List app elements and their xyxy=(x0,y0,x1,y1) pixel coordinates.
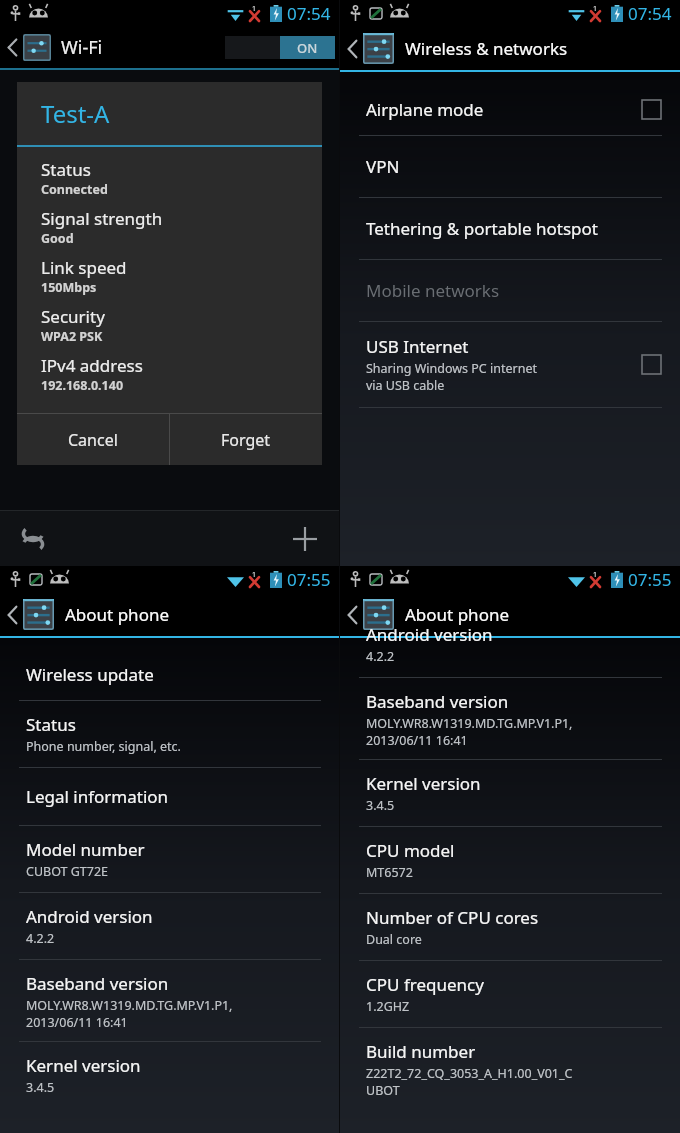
staticText: UBOT xyxy=(366,1082,400,1096)
staticText: Status xyxy=(26,713,76,736)
staticText: 2013/06/11 16:41 xyxy=(26,1014,128,1031)
button[interactable]: Status xyxy=(0,701,339,767)
button[interactable]: Wi-Fi on off switch xyxy=(225,36,335,59)
staticText: Android version xyxy=(366,623,493,646)
button[interactable]: Baseband version xyxy=(340,678,680,759)
staticText: ON xyxy=(297,39,318,57)
staticText: 1 xyxy=(252,570,257,580)
staticText: Dual core xyxy=(366,931,422,948)
staticText: 07:54 xyxy=(628,2,672,25)
other: Back xyxy=(347,604,358,626)
button[interactable]: Airplane mode xyxy=(340,84,680,135)
staticText: Good xyxy=(41,230,74,247)
staticText: Build number xyxy=(366,1040,476,1063)
staticText: Baseband version xyxy=(366,690,509,713)
button[interactable]: Mobile networks xyxy=(340,260,680,321)
staticText: VPN xyxy=(366,155,400,178)
staticText: CUBOT GT72E xyxy=(26,863,109,880)
button[interactable]: VPN xyxy=(340,136,680,197)
staticText: Mobile networks xyxy=(366,279,500,302)
staticText: About phone xyxy=(65,603,170,626)
staticText: MT6572 xyxy=(366,864,413,881)
staticText: Model number xyxy=(26,838,145,861)
button[interactable]: Baseband version xyxy=(0,960,339,1041)
button[interactable]: Kernel version xyxy=(0,1042,339,1108)
button[interactable]: Android version xyxy=(340,611,680,677)
staticText: Z22T2_72_CQ_3053_A_H1.00_V01_C xyxy=(366,1065,573,1082)
button[interactable]: Airplane mode checkbox xyxy=(641,99,662,120)
staticText: Sharing Windows PC internet xyxy=(366,360,537,377)
staticText: Connected xyxy=(41,181,108,198)
button[interactable]: Model number xyxy=(0,826,339,892)
staticText: 1.2GHZ xyxy=(366,998,410,1015)
button[interactable]: Forget xyxy=(170,414,322,465)
button[interactable]: Add network xyxy=(291,525,319,553)
staticText: 150Mbps xyxy=(41,279,97,296)
button[interactable]: Wireless update xyxy=(0,649,339,700)
staticText: WPA2 PSK xyxy=(41,328,103,345)
staticText: 4.2.2 xyxy=(26,930,55,947)
button[interactable]: Tethering & portable hotspot xyxy=(340,198,680,259)
staticText: Android version xyxy=(26,905,153,928)
staticText: via USB cable xyxy=(366,377,445,394)
staticText: Tethering & portable hotspot xyxy=(366,217,598,240)
button[interactable]: CPU model xyxy=(340,827,680,893)
staticText: Legal information xyxy=(26,785,169,808)
staticText: 2013/06/11 16:41 xyxy=(366,732,468,749)
button[interactable]: Back xyxy=(0,27,339,68)
staticText: USB Internet xyxy=(366,335,469,358)
button[interactable]: Number of CPU cores xyxy=(340,894,680,960)
button[interactable]: USB Internet checkbox xyxy=(641,354,662,375)
button[interactable]: Cancel xyxy=(17,414,169,465)
staticText: MOLY.WR8.W1319.MD.TG.MP.V1.P1, xyxy=(366,715,573,732)
button[interactable]: Back xyxy=(0,593,339,636)
staticText: Wi-Fi xyxy=(61,35,103,60)
staticText: Number of CPU cores xyxy=(366,906,539,929)
button[interactable]: Android version xyxy=(0,893,339,959)
button[interactable]: Kernel version xyxy=(340,760,680,826)
staticText: 07:54 xyxy=(287,2,331,25)
staticText: Wireless & networks xyxy=(405,37,568,60)
staticText: Link speed xyxy=(41,256,127,279)
staticText: Kernel version xyxy=(26,1054,141,1077)
button[interactable]: Legal information xyxy=(0,768,339,825)
button[interactable]: Back xyxy=(340,593,680,636)
button[interactable]: CPU frequency xyxy=(340,961,680,1027)
staticText: Kernel version xyxy=(366,772,481,795)
button[interactable]: Build number xyxy=(340,1028,680,1106)
staticText: 3.4.5 xyxy=(26,1079,55,1096)
staticText: Status xyxy=(41,158,91,181)
staticText: Signal strength xyxy=(41,207,163,230)
staticText: Wireless update xyxy=(26,663,154,686)
staticText: 192.168.0.140 xyxy=(41,377,124,394)
button[interactable]: Scan xyxy=(18,524,48,554)
staticText: 3.4.5 xyxy=(366,797,395,814)
button[interactable]: USB Internet xyxy=(340,322,680,407)
staticText: Baseband version xyxy=(26,972,169,995)
staticText: 4.2.2 xyxy=(366,648,395,665)
staticText: 1 xyxy=(593,4,598,14)
staticText: CPU frequency xyxy=(366,973,484,996)
staticText: Security xyxy=(41,305,105,328)
staticText: MOLY.WR8.W1319.MD.TG.MP.V1.P1, xyxy=(26,997,233,1014)
staticText: 07:55 xyxy=(628,568,672,591)
staticText: 1 xyxy=(593,570,598,580)
staticText: 07:55 xyxy=(287,568,331,591)
staticText: About phone xyxy=(405,603,510,626)
staticText: Phone number, signal, etc. xyxy=(26,738,181,755)
staticText: Airplane mode xyxy=(366,98,484,121)
staticText: Cancel xyxy=(68,429,118,451)
staticText: 1 xyxy=(252,4,257,14)
other: Back xyxy=(7,37,18,58)
other: Back xyxy=(7,604,18,626)
staticText: Forget xyxy=(221,429,271,451)
staticText: CPU model xyxy=(366,839,455,862)
other: Back xyxy=(347,38,358,60)
staticText: Test-A xyxy=(41,97,110,130)
staticText: IPv4 address xyxy=(41,354,143,377)
button[interactable]: Back xyxy=(340,27,680,70)
